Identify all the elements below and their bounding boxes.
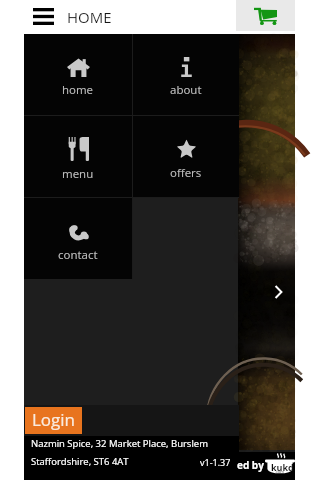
button[interactable]: contact xyxy=(24,198,132,279)
staticText: .com xyxy=(275,469,285,474)
staticText: ed by xyxy=(237,458,264,472)
button[interactable]: kukd.com xyxy=(265,453,295,475)
staticText: offers xyxy=(170,165,202,181)
staticText: contact xyxy=(58,247,98,263)
staticText: v1-1.37 xyxy=(200,456,231,468)
button[interactable]: Login xyxy=(25,407,82,434)
staticText: about xyxy=(170,82,202,98)
staticText: kukd xyxy=(271,461,294,473)
staticText: Login xyxy=(32,408,76,431)
button[interactable]: offers xyxy=(133,116,239,197)
button[interactable]: home xyxy=(24,34,132,115)
staticText: Staffordshire, ST6 4AT xyxy=(31,455,129,468)
button[interactable]: menu xyxy=(24,116,132,197)
button[interactable]: about xyxy=(133,34,239,115)
staticText: menu xyxy=(62,166,94,182)
button[interactable]: Shopping cart xyxy=(236,0,295,31)
button[interactable]: Open navigation menu xyxy=(33,8,54,25)
staticText: HOME xyxy=(67,7,112,27)
staticText: Nazmin Spice, 32 Market Place, Burslem xyxy=(31,437,208,450)
button[interactable]: Gallery xyxy=(238,34,295,450)
staticText: home xyxy=(62,82,94,98)
